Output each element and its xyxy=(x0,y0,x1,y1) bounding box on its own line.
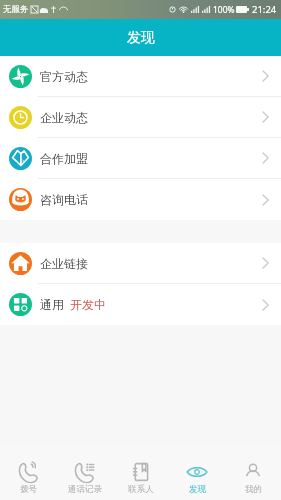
staticText: 咨询电话 xyxy=(40,192,88,207)
button[interactable]: 通话记录 xyxy=(57,445,113,500)
button[interactable]: 拨号 xyxy=(0,445,57,500)
staticText: 21:24 xyxy=(252,3,277,16)
staticText: 通话记录 xyxy=(68,484,102,495)
button[interactable]: 合作加盟 xyxy=(0,138,281,179)
staticText: 合作加盟 xyxy=(40,151,88,166)
button[interactable]: 企业动态 xyxy=(0,97,281,138)
button[interactable]: 发现 xyxy=(169,445,225,500)
staticText: 企业链接 xyxy=(40,256,88,271)
staticText: 发现 xyxy=(189,484,206,495)
staticText: 开发中 xyxy=(70,297,106,312)
staticText: 100% xyxy=(213,4,235,16)
button[interactable]: 我的 xyxy=(225,445,281,500)
staticText: 发现 xyxy=(127,29,155,47)
staticText: 联系人 xyxy=(128,484,154,495)
button[interactable]: 企业链接 xyxy=(0,243,281,284)
staticText: 官方动态 xyxy=(40,69,88,84)
button[interactable]: 官方动态 xyxy=(0,56,281,97)
staticText: 企业动态 xyxy=(40,110,88,125)
staticText: 无服务 xyxy=(3,4,29,15)
button[interactable]: 联系人 xyxy=(113,445,169,500)
staticText: 拨号 xyxy=(20,484,37,495)
button[interactable]: 通用 xyxy=(0,284,281,325)
button[interactable]: 咨询电话 xyxy=(0,179,281,220)
staticText: 我的 xyxy=(245,484,262,495)
staticText: 通用 xyxy=(40,297,64,312)
